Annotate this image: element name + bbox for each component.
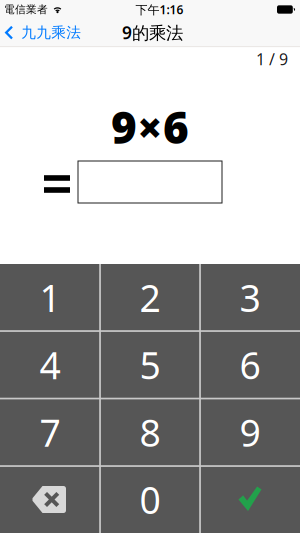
staticText: 9×6 bbox=[111, 97, 189, 156]
staticText: 電信業者 bbox=[4, 3, 48, 16]
button[interactable]: 確認 bbox=[200, 466, 300, 533]
staticText: 3 bbox=[239, 273, 260, 322]
button[interactable]: 9 bbox=[200, 398, 300, 466]
staticText: 6 bbox=[239, 340, 260, 390]
button[interactable]: 1 bbox=[0, 264, 100, 331]
staticText: 下午1:16 bbox=[135, 1, 183, 17]
staticText: 1 / 9 bbox=[256, 48, 288, 70]
staticText: 7 bbox=[39, 407, 60, 457]
button[interactable]: 6 bbox=[200, 331, 300, 398]
staticText: 5 bbox=[139, 340, 160, 390]
button[interactable]: 3 bbox=[200, 264, 300, 331]
button[interactable]: 2 bbox=[100, 264, 200, 331]
button[interactable]: 0 bbox=[100, 466, 200, 533]
staticText: 8 bbox=[139, 407, 160, 457]
button[interactable]: 5 bbox=[100, 331, 200, 398]
button[interactable]: 刪除 bbox=[0, 466, 100, 533]
staticText: 九九乘法 bbox=[21, 24, 81, 42]
staticText: 9 bbox=[239, 407, 260, 457]
staticText: 1 bbox=[39, 273, 60, 322]
button[interactable]: 答案輸入欄 bbox=[78, 161, 222, 203]
button[interactable]: 返回九九乘法 bbox=[0, 24, 81, 42]
staticText: 2 bbox=[139, 273, 160, 322]
button[interactable]: 4 bbox=[0, 331, 100, 398]
staticText: 0 bbox=[139, 475, 160, 524]
button[interactable]: 8 bbox=[100, 398, 200, 466]
staticText: 4 bbox=[39, 340, 60, 390]
staticText: 9的乘法 bbox=[122, 21, 183, 44]
button[interactable]: 7 bbox=[0, 398, 100, 466]
